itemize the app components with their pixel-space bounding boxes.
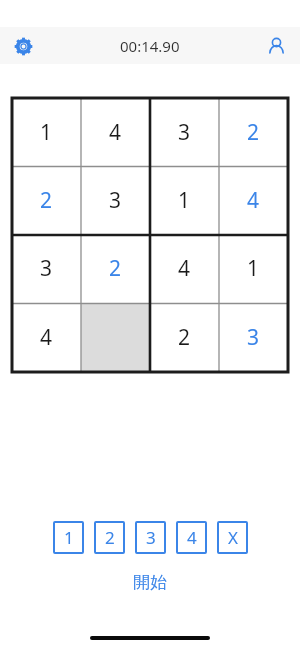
staticText: 3 — [109, 186, 122, 215]
staticText: 1 — [40, 118, 53, 147]
staticText: 3 — [178, 118, 191, 147]
button[interactable]: 3 — [135, 521, 166, 554]
staticText: 4 — [247, 186, 260, 215]
staticText: 4 — [178, 254, 191, 283]
staticText: 4 — [109, 118, 122, 147]
staticText: 2 — [109, 254, 122, 283]
staticText: 4 — [187, 526, 197, 549]
button[interactable]: 4 — [81, 98, 150, 166]
staticText: 3 — [247, 323, 260, 352]
staticText: 1 — [64, 526, 74, 549]
button[interactable]: 2 — [12, 166, 81, 234]
staticText: 3 — [146, 526, 156, 549]
button[interactable]: 3 — [12, 234, 81, 303]
button[interactable]: 1 — [150, 166, 219, 234]
button[interactable]: 2 — [150, 303, 219, 372]
button[interactable]: 開始 — [111, 568, 189, 597]
button[interactable]: 1 — [53, 521, 84, 554]
button[interactable]: 3 — [150, 98, 219, 166]
staticText: 2 — [105, 526, 115, 549]
button[interactable]: 2 — [219, 98, 288, 166]
button[interactable]: 4 — [176, 521, 207, 554]
button[interactable]: 3 — [81, 166, 150, 234]
button[interactable]: 3 — [219, 303, 288, 372]
button[interactable]: 4 — [219, 166, 288, 234]
button[interactable]: Settings — [9, 32, 37, 60]
staticText: 3 — [40, 254, 53, 283]
staticText: 2 — [40, 186, 53, 215]
button[interactable]: 1 — [12, 98, 81, 166]
button[interactable] — [81, 303, 150, 372]
button[interactable]: 2 — [94, 521, 125, 554]
staticText: X — [228, 526, 238, 549]
button[interactable]: 2 — [81, 234, 150, 303]
button[interactable]: X — [217, 521, 248, 554]
button[interactable]: Account — [262, 32, 290, 60]
staticText: 4 — [40, 323, 53, 352]
button[interactable]: 4 — [150, 234, 219, 303]
staticText: 00:14.90 — [120, 36, 180, 56]
staticText: 1 — [247, 254, 260, 283]
staticText: 開始 — [133, 572, 167, 593]
staticText: 2 — [178, 323, 191, 352]
button[interactable]: 4 — [12, 303, 81, 372]
staticText: 2 — [247, 118, 260, 147]
button[interactable]: 1 — [219, 234, 288, 303]
staticText: 1 — [178, 186, 191, 215]
